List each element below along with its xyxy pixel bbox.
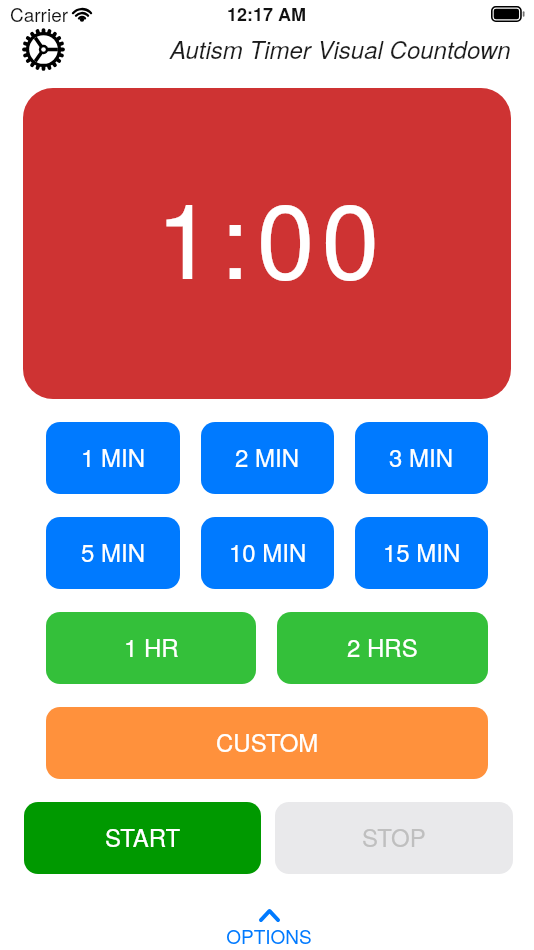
button[interactable]: 1 HR: [46, 612, 256, 684]
button[interactable]: START: [24, 802, 261, 874]
button[interactable]: 3 MIN: [355, 422, 488, 494]
staticText: 1 MIN: [81, 439, 146, 473]
button[interactable]: 2 MIN: [201, 422, 334, 494]
staticText: 15 MIN: [383, 534, 461, 568]
button[interactable]: 10 MIN: [201, 517, 334, 589]
button[interactable]: OPTIONS: [2, 909, 534, 949]
staticText: STOP: [362, 819, 426, 853]
button[interactable]: Autism Timer Visual Countdown: [170, 32, 511, 66]
staticText: START: [105, 819, 181, 853]
button[interactable]: 5 MIN: [46, 517, 180, 589]
staticText: OPTIONS: [226, 922, 312, 949]
staticText: 1 HR: [124, 629, 179, 663]
button[interactable]: 15 MIN: [355, 517, 488, 589]
button[interactable]: 2 HRS: [277, 612, 488, 684]
staticText: CUSTOM: [216, 724, 319, 758]
staticText: 1:00: [156, 160, 387, 309]
staticText: 2 MIN: [235, 439, 300, 473]
staticText: Carrier: [10, 0, 69, 27]
staticText: 5 MIN: [81, 534, 146, 568]
staticText: 3 MIN: [389, 439, 454, 473]
button[interactable]: 1 MIN: [46, 422, 180, 494]
button[interactable]: 1:00: [23, 88, 511, 399]
staticText: 12:17 AM: [227, 1, 307, 27]
staticText: 2 HRS: [347, 629, 418, 663]
button[interactable]: Settings: [22, 28, 65, 71]
button[interactable]: STOP: [275, 802, 513, 874]
button[interactable]: CUSTOM: [46, 707, 488, 779]
staticText: 10 MIN: [229, 534, 307, 568]
